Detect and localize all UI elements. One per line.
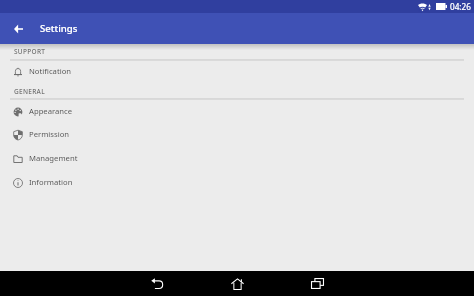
button[interactable]: Information: [0, 171, 474, 195]
staticText: Permission: [29, 129, 70, 139]
staticText: Appearance: [29, 106, 73, 116]
staticText: Notification: [29, 66, 72, 76]
button[interactable]: Home: [217, 271, 257, 296]
button[interactable]: Appearance: [0, 100, 474, 123]
button[interactable]: Notification: [0, 61, 474, 84]
button[interactable]: Back: [7, 18, 29, 40]
staticText: 04:26: [450, 1, 471, 12]
button[interactable]: Permission: [0, 123, 474, 147]
staticText: SUPPORT: [14, 47, 46, 56]
button[interactable]: Back: [137, 271, 177, 296]
staticText: Information: [29, 177, 73, 187]
button[interactable]: Management: [0, 147, 474, 171]
staticText: Management: [29, 153, 78, 163]
staticText: Settings: [40, 22, 78, 35]
staticText: GENERAL: [14, 87, 45, 96]
button[interactable]: Recents: [297, 271, 337, 296]
